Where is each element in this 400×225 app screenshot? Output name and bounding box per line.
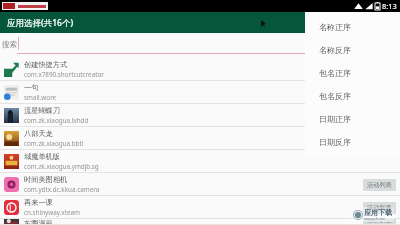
- staticText: 日期反序: [319, 137, 351, 147]
- button[interactable]: 包名反序: [305, 84, 400, 107]
- other: App icon: [4, 200, 19, 215]
- other: App icon: [4, 177, 19, 192]
- staticText: com.zk.xiaogua.lxhdd: [24, 116, 89, 125]
- staticText: 日期正序: [319, 114, 351, 124]
- staticText: com.zk.xiaogua.ymdjb.sg: [24, 162, 99, 171]
- staticText: 创建快捷方式: [24, 60, 68, 69]
- staticText: com.x7890.shortcutcreator: [24, 70, 104, 79]
- staticText: 流星蝴蝶刀: [24, 106, 60, 115]
- staticText: 再来一课: [24, 198, 53, 207]
- staticText: 名称反序: [319, 45, 351, 55]
- button[interactable]: 活动列表: [367, 221, 392, 223]
- button[interactable]: 包名正序: [305, 61, 400, 84]
- other: App icon: [4, 131, 19, 146]
- button[interactable]: 日期正序: [305, 107, 400, 130]
- staticText: 应用选择(共16个): [7, 17, 74, 29]
- button[interactable]: App icon: [0, 219, 400, 225]
- other: App icon: [4, 62, 19, 77]
- button[interactable]: 名称正序: [305, 15, 400, 38]
- other: App icon: [4, 108, 19, 123]
- button[interactable]: App icon: [0, 196, 400, 219]
- staticText: www.pc6.com: [364, 217, 385, 221]
- staticText: 一句: [24, 83, 39, 92]
- other: App icon: [4, 85, 19, 100]
- staticText: cn.shinyway.xteam: [24, 208, 80, 217]
- button[interactable]: 搜索: [0, 33, 400, 58]
- button[interactable]: App icon: [0, 127, 400, 150]
- staticText: com.zk.xiaogua.bbtl: [24, 139, 84, 148]
- button[interactable]: 名称反序: [305, 38, 400, 61]
- staticText: 八部天龙: [24, 129, 53, 138]
- staticText: 搜索: [2, 40, 17, 49]
- staticText: 时间美图相机: [24, 175, 68, 184]
- staticText: 车圈漫画: [24, 219, 53, 225]
- button[interactable]: 日期反序: [305, 130, 400, 153]
- staticText: 活动列表: [367, 181, 392, 189]
- button[interactable]: App icon: [0, 58, 400, 81]
- staticText: 包名正序: [319, 68, 351, 78]
- staticText: 活动列表: [367, 221, 392, 223]
- other: App icon: [4, 219, 19, 225]
- button[interactable]: App icon: [0, 150, 400, 173]
- staticText: 域魔单机版: [24, 152, 60, 161]
- other: App icon: [4, 154, 19, 169]
- button[interactable]: App icon: [0, 104, 400, 127]
- staticText: 应用下载: [364, 208, 392, 217]
- button[interactable]: 应用选择(共16个): [7, 17, 74, 29]
- staticText: 名称正序: [319, 22, 351, 32]
- button[interactable]: App icon: [0, 81, 400, 104]
- staticText: com.ydtx.dc.kkua.camera: [24, 185, 100, 194]
- staticText: small.wore: [24, 93, 57, 102]
- staticText: 8:13: [382, 1, 397, 11]
- button[interactable]: 活动列表: [367, 204, 392, 212]
- button[interactable]: App icon: [0, 173, 400, 196]
- button[interactable]: 活动列表: [367, 181, 392, 189]
- staticText: 活动列表: [367, 204, 392, 212]
- staticText: 包名反序: [319, 91, 351, 101]
